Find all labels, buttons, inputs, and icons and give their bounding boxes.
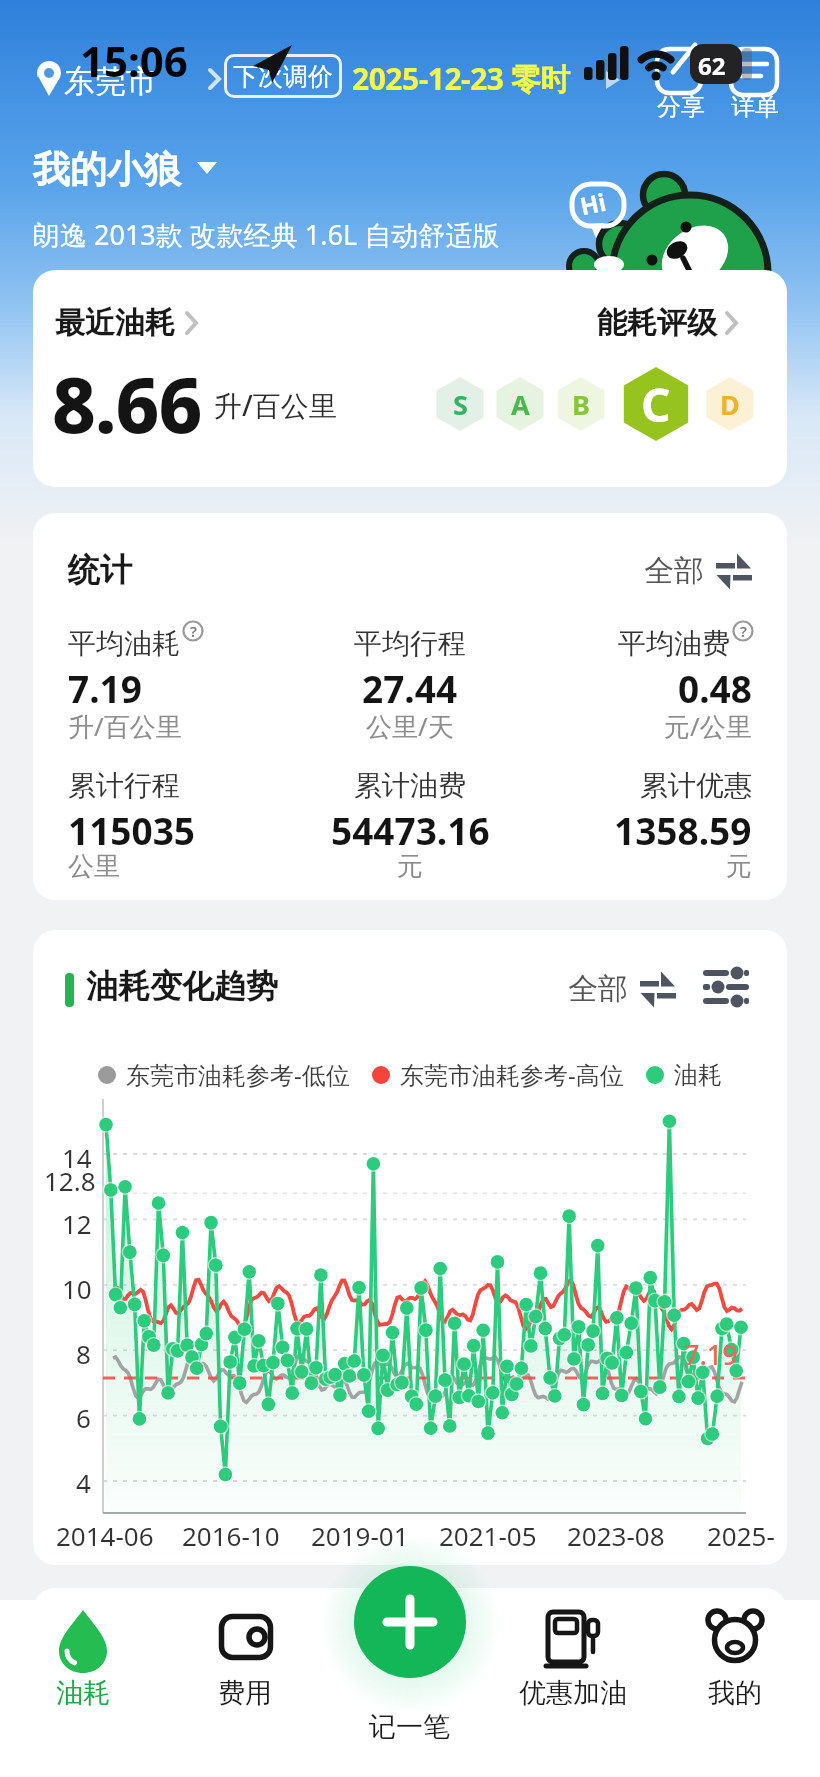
staticText: 累计油费 (354, 768, 466, 803)
staticText: 2025-12-23 零时 (352, 58, 570, 99)
staticText: 全部 (644, 552, 704, 590)
staticText: 全部 (568, 970, 628, 1008)
staticText: 7.19 (684, 1336, 738, 1373)
staticText: 油耗变化趋势 (86, 966, 278, 1006)
button[interactable] (654, 42, 708, 96)
staticText: 14 (62, 1140, 92, 1175)
button[interactable]: 下次调价 (224, 54, 342, 98)
staticText: 平均行程 (354, 626, 466, 661)
staticText: 12 (62, 1206, 92, 1241)
staticText: 东莞市油耗参考-高位 (400, 1058, 624, 1091)
staticText: 0.48 (678, 663, 752, 713)
staticText: C (641, 373, 671, 436)
staticText: A (511, 386, 530, 423)
staticText: 能耗评级 (597, 304, 717, 342)
staticText: ? (740, 621, 747, 641)
staticText: 平均油费 (618, 626, 730, 661)
staticText: 2025- (707, 1518, 775, 1553)
button[interactable] (354, 1566, 466, 1678)
staticText: Hi (577, 185, 609, 222)
staticText: 2023-08 (567, 1518, 665, 1553)
staticText: 6 (76, 1400, 91, 1435)
staticText: 升/百公里 (214, 386, 337, 424)
staticText: 8.66 (52, 352, 202, 456)
staticText: 下次调价 (233, 61, 333, 92)
staticText: 元 (726, 850, 752, 883)
staticText: 8 (76, 1336, 91, 1371)
staticText: 详单 (731, 92, 779, 122)
staticText: 元 (397, 850, 423, 883)
staticText: D (720, 386, 740, 423)
staticText: B (572, 386, 590, 423)
staticText: 记一笔 (369, 1710, 450, 1744)
staticText: 2016-10 (182, 1518, 280, 1553)
staticText: 27.44 (362, 663, 458, 713)
button[interactable]: 费用 (202, 1604, 288, 1710)
button[interactable]: 优惠加油 (515, 1604, 631, 1710)
staticText: 公里 (68, 850, 120, 883)
button[interactable]: 能耗评级 (597, 304, 739, 342)
staticText: 元/公里 (664, 708, 752, 744)
button[interactable] (703, 968, 749, 1008)
staticText: 4 (76, 1465, 91, 1500)
staticText: 我的 (708, 1676, 762, 1710)
staticText: 统计 (68, 550, 132, 590)
staticText: 升/百公里 (68, 708, 182, 744)
staticText: 2021-05 (439, 1518, 537, 1553)
staticText: 东莞市油耗参考-低位 (126, 1058, 350, 1091)
button[interactable]: 油耗 (40, 1604, 126, 1710)
button[interactable]: 东莞市 (64, 62, 157, 101)
staticText: 累计优惠 (640, 768, 752, 803)
staticText: 1358.59 (614, 805, 752, 855)
button[interactable]: 最近油耗 (55, 304, 199, 342)
staticText: 分享 (657, 92, 705, 122)
staticText: 油耗 (56, 1676, 110, 1710)
button[interactable]: 我的 (692, 1604, 778, 1710)
button[interactable]: 我的小狼 (33, 146, 181, 193)
staticText: 62 (698, 49, 726, 82)
staticText: 7.19 (68, 663, 142, 713)
button[interactable]: 全部 (644, 552, 752, 590)
staticText: 115035 (68, 805, 195, 855)
staticText: 公里/天 (366, 708, 454, 744)
staticText: 10 (62, 1271, 92, 1306)
staticText: 15:06 (80, 32, 188, 89)
staticText: 54473.16 (331, 805, 490, 855)
button[interactable] (728, 42, 782, 96)
staticText: ? (190, 621, 197, 641)
staticText: 12.8 (44, 1163, 96, 1198)
staticText: 2014-06 (56, 1518, 154, 1553)
staticText: 油耗 (674, 1060, 722, 1090)
staticText: S (453, 386, 468, 423)
staticText: 优惠加油 (519, 1676, 627, 1710)
staticText: 2019-01 (311, 1518, 409, 1553)
button[interactable]: 全部 (568, 970, 676, 1008)
staticText: 平均油耗 (68, 626, 180, 661)
staticText: 费用 (218, 1676, 272, 1710)
staticText: 最近油耗 (55, 304, 175, 342)
staticText: 累计行程 (68, 768, 180, 803)
staticText: 朗逸 2013款 改款经典 1.6L 自动舒适版 (33, 216, 500, 253)
